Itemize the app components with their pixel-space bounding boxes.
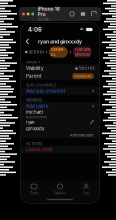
button[interactable]: ryan and ginxxxdy xyxy=(73,46,92,58)
staticText: ryan and ginxxxdy xyxy=(38,38,82,45)
button[interactable]: Visibility xyxy=(21,64,99,72)
button[interactable]: Take screenshot xyxy=(79,10,86,17)
staticText: GENERAL xyxy=(51,47,66,57)
staticText: Secret xyxy=(79,66,94,71)
staticText: GENERAL xyxy=(74,74,92,78)
staticText: iPhone 16 Pro xyxy=(38,6,60,17)
button[interactable]: Parent xyxy=(21,72,99,80)
button[interactable]: Remove user xyxy=(21,132,99,138)
staticText: 4:06 xyxy=(28,26,42,33)
button[interactable]: Spaces xyxy=(47,182,73,196)
button[interactable]: Back xyxy=(24,37,31,46)
staticText: MEMBERS xyxy=(26,98,42,102)
button[interactable]: Add users xyxy=(21,102,99,110)
staticText: school xyxy=(29,49,44,55)
button[interactable]: michael xyxy=(21,110,99,119)
staticText: PRIVACY xyxy=(26,60,41,64)
staticText: You xyxy=(83,191,89,195)
button[interactable]: ryan xyxy=(21,119,99,125)
staticText: michael xyxy=(26,109,43,115)
staticText: SUB-CHANNELS xyxy=(26,83,56,87)
button[interactable]: Record screen xyxy=(90,10,97,17)
button[interactable]: ginxxxdy xyxy=(21,125,99,132)
button[interactable]: Leave chat xyxy=(21,146,99,153)
staticText: ryan and ginxxxdy xyxy=(75,47,90,57)
button[interactable]: You xyxy=(73,182,99,196)
staticText: Chats xyxy=(29,191,38,195)
staticText: Add users xyxy=(26,103,48,109)
staticText: psycholotron xyxy=(26,115,47,119)
button[interactable]: Add sub-channel xyxy=(21,87,99,95)
staticText: Leave chat xyxy=(26,147,53,152)
staticText: Remove user xyxy=(70,133,94,137)
staticText: Parent xyxy=(26,73,42,79)
staticText: Spaces xyxy=(54,191,66,195)
button[interactable]: school xyxy=(25,49,44,55)
staticText: ginxxxdy xyxy=(26,126,44,131)
staticText: ryan xyxy=(26,119,35,125)
button[interactable]: Chats xyxy=(21,182,47,196)
staticText: Add sub-channel xyxy=(26,88,65,94)
staticText: Visibility xyxy=(26,65,44,71)
staticText: ACTIONS xyxy=(26,141,42,146)
button[interactable]: GENERAL xyxy=(49,46,68,58)
staticText: iOS 18.1 xyxy=(38,17,50,22)
button[interactable]: Rotate device xyxy=(68,10,75,17)
